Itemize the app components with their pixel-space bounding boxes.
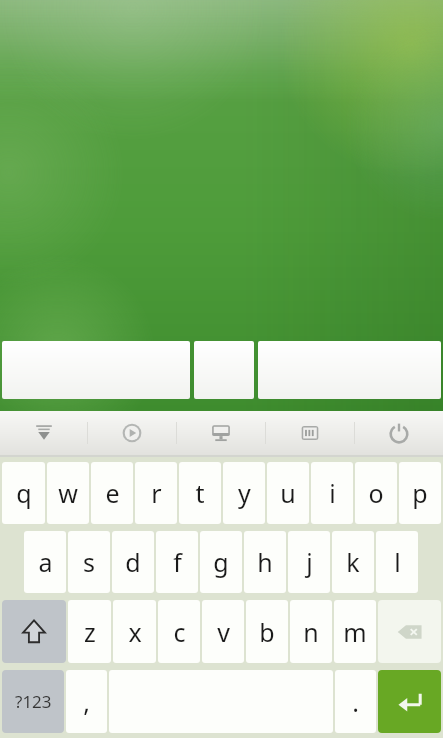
button[interactable]: k — [332, 531, 374, 593]
staticText: w — [58, 476, 78, 510]
staticText: q — [16, 476, 32, 510]
staticText: , — [83, 685, 90, 719]
button[interactable]: c — [158, 600, 200, 663]
staticText: . — [352, 685, 359, 719]
staticText: l — [394, 545, 401, 579]
staticText: v — [217, 615, 230, 649]
staticText: r — [151, 476, 162, 510]
staticText: o — [368, 476, 384, 510]
button[interactable]: n — [290, 600, 332, 663]
button[interactable]: . — [335, 670, 376, 733]
button[interactable] — [258, 341, 441, 399]
button[interactable]: h — [244, 531, 286, 593]
button[interactable]: Backspace — [378, 600, 441, 663]
button[interactable]: w — [47, 462, 89, 524]
staticText: p — [412, 476, 428, 510]
button[interactable]: Enter — [378, 670, 441, 733]
button[interactable]: j — [288, 531, 330, 593]
staticText: j — [306, 545, 313, 579]
staticText: e — [105, 476, 120, 510]
button[interactable] — [2, 341, 190, 399]
button[interactable]: e — [91, 462, 133, 524]
button[interactable]: b — [246, 600, 288, 663]
staticText: n — [303, 615, 319, 649]
button[interactable]: Display — [177, 411, 265, 455]
button[interactable]: y — [223, 462, 265, 524]
staticText: m — [343, 615, 367, 649]
staticText: u — [280, 476, 296, 510]
button[interactable]: d — [112, 531, 154, 593]
button[interactable]: t — [179, 462, 221, 524]
button[interactable]: p — [399, 462, 441, 524]
staticText: d — [125, 545, 141, 579]
staticText: g — [213, 545, 229, 579]
button[interactable]: ?123 — [2, 670, 64, 733]
button[interactable]: u — [267, 462, 309, 524]
button[interactable]: Shift — [2, 600, 66, 663]
staticText: i — [329, 476, 336, 510]
button[interactable]: Power — [355, 411, 443, 455]
button[interactable]: q — [2, 462, 45, 524]
staticText: h — [257, 545, 273, 579]
button[interactable]: Numbers — [266, 411, 354, 455]
staticText: y — [238, 476, 251, 510]
button[interactable]: a — [24, 531, 66, 593]
staticText: ?123 — [15, 690, 52, 713]
button[interactable]: r — [135, 462, 177, 524]
button[interactable]: g — [200, 531, 242, 593]
staticText: b — [259, 615, 275, 649]
button[interactable]: , — [66, 670, 107, 733]
staticText: a — [38, 545, 53, 579]
button[interactable]: x — [113, 600, 156, 663]
staticText: x — [128, 615, 142, 649]
staticText: k — [346, 545, 360, 579]
staticText: z — [84, 615, 96, 649]
button[interactable]: s — [68, 531, 110, 593]
staticText: s — [83, 545, 95, 579]
button[interactable]: i — [311, 462, 353, 524]
staticText: f — [173, 545, 182, 579]
button[interactable]: z — [68, 600, 111, 663]
button[interactable]: o — [355, 462, 397, 524]
button[interactable]: Collapse keyboard — [0, 411, 87, 455]
button[interactable] — [194, 341, 254, 399]
staticText: t — [195, 476, 205, 510]
button[interactable]: f — [156, 531, 198, 593]
button[interactable]: Play — [88, 411, 176, 455]
staticText: c — [173, 615, 186, 649]
button[interactable]: l — [376, 531, 418, 593]
button[interactable]: m — [334, 600, 376, 663]
button[interactable]: v — [202, 600, 244, 663]
